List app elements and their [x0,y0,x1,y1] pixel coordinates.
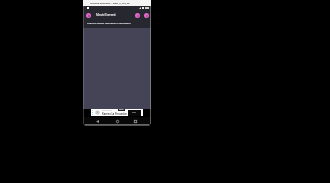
button[interactable]: Sponsored app [91,109,143,116]
staticText: Karens La Pesseclar [102,112,127,115]
staticText: Open [132,111,137,113]
staticText: Wait the search operation is processed [87,21,131,24]
staticText: Sponsored app [102,110,112,112]
button[interactable]: Open [128,110,141,116]
staticText: Test Ad [119,109,124,111]
staticText: Android Emulator - Pixel_2_API_29 [90,1,130,4]
staticText: MovieTorrent [96,13,116,17]
staticText: Android Emulator - Pixel_2_API_29 [90,1,130,4]
button[interactable]: Back [94,117,101,125]
button[interactable]: Home [114,117,121,125]
button[interactable]: More options [144,13,149,18]
button[interactable]: Search [135,13,140,18]
button[interactable]: Recents [132,117,139,125]
